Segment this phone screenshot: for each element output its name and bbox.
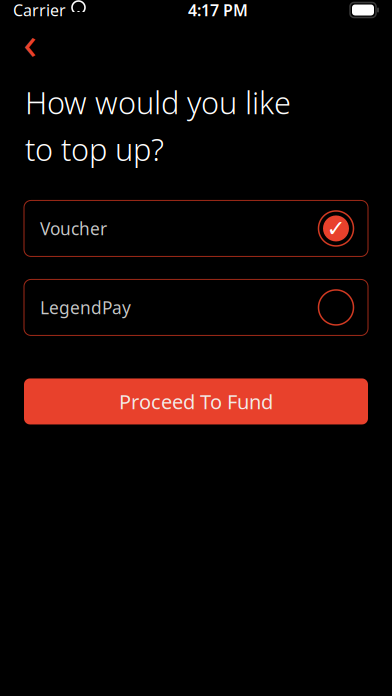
staticText: ‹: [23, 12, 37, 72]
button[interactable]: Proceed To Fund: [24, 378, 368, 424]
staticText: LegendPay: [40, 296, 131, 319]
staticText: How would you like: [25, 82, 291, 123]
staticText: Voucher: [40, 217, 107, 240]
staticText: 4:17 PM: [188, 0, 248, 21]
staticText: ✓: [326, 216, 345, 241]
button[interactable]: Voucher: [24, 200, 368, 256]
button[interactable]: LegendPay: [24, 279, 368, 335]
staticText: Carrier: [13, 0, 66, 21]
button[interactable]: Back: [8, 20, 52, 64]
staticText: Proceed To Fund: [119, 388, 273, 415]
staticText: to top up?: [25, 129, 164, 169]
